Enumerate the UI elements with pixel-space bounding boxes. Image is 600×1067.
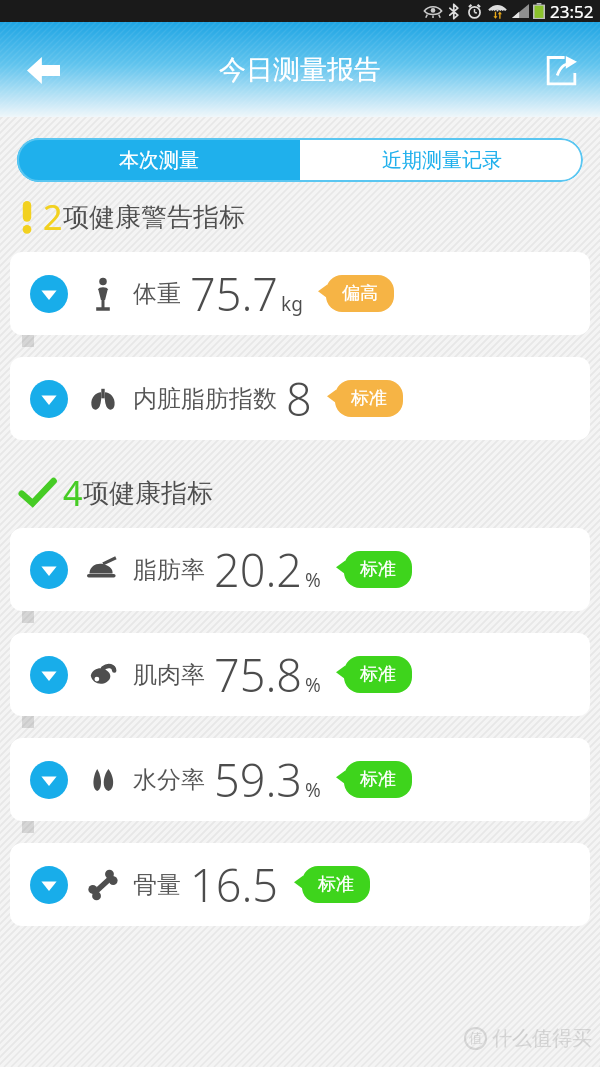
other: Expand — [30, 866, 68, 904]
staticText: 体重 — [133, 279, 181, 309]
staticText: 4 — [63, 470, 83, 516]
staticText: 20.2 — [214, 539, 303, 600]
button[interactable]: Expand — [10, 843, 590, 926]
staticText: 75.7 — [190, 263, 279, 324]
button[interactable]: Expand — [10, 738, 590, 821]
button[interactable]: Expand — [10, 357, 590, 440]
staticText: 项健康指标 — [83, 477, 213, 510]
staticText: 脂肪率 — [133, 555, 205, 585]
button[interactable]: 近期测量记录 — [300, 138, 583, 182]
button[interactable]: Expand — [10, 528, 590, 611]
other: Expand — [30, 656, 68, 694]
button[interactable]: Back — [14, 41, 72, 99]
staticText: 标准 — [351, 387, 387, 410]
staticText: 水分率 — [133, 765, 205, 795]
staticText: 标准 — [360, 558, 396, 581]
other: Expand — [30, 380, 68, 418]
staticText: % — [305, 672, 321, 698]
staticText: 什么值得买 — [492, 1026, 592, 1051]
staticText: % — [305, 777, 321, 803]
staticText: 16.5 — [190, 854, 279, 915]
staticText: kg — [281, 291, 303, 317]
staticText: 骨量 — [133, 870, 181, 900]
staticText: 本次测量 — [119, 148, 199, 173]
staticText: 肌肉率 — [133, 660, 205, 690]
button[interactable]: Share — [534, 43, 588, 97]
staticText: 标准 — [360, 768, 396, 791]
staticText: % — [305, 567, 321, 593]
button[interactable]: Expand — [10, 252, 590, 335]
staticText: 项健康警告指标 — [63, 201, 245, 234]
staticText: 23:52 — [550, 0, 594, 22]
button[interactable]: Expand — [10, 633, 590, 716]
staticText: 标准 — [360, 663, 396, 686]
other: Expand — [30, 761, 68, 799]
other: Expand — [30, 275, 68, 313]
staticText: 值 — [469, 1030, 483, 1048]
staticText: 标准 — [318, 873, 354, 896]
staticText: 8 — [286, 368, 312, 429]
staticText: 内脏脂肪指数 — [133, 384, 277, 414]
other: Expand — [30, 551, 68, 589]
staticText: 59.3 — [214, 749, 303, 810]
staticText: 2 — [43, 194, 63, 240]
staticText: 今日测量报告 — [219, 53, 381, 87]
button[interactable]: 本次测量 — [17, 138, 300, 182]
staticText: 75.8 — [214, 644, 303, 705]
staticText: 近期测量记录 — [382, 148, 502, 173]
staticText: 偏高 — [342, 282, 378, 305]
